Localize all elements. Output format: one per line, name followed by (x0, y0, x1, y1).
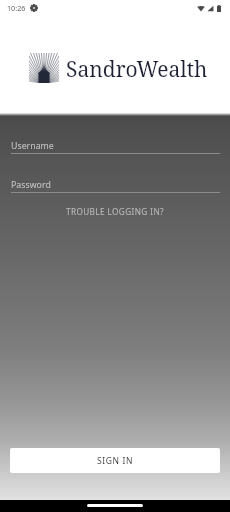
other: Wi-Fi (197, 5, 205, 12)
staticText: SIGN IN (97, 455, 133, 467)
button[interactable]: Password (11, 179, 220, 193)
button[interactable]: Username (11, 140, 220, 154)
staticText: TROUBLE LOGGING IN? (66, 206, 164, 217)
staticText: SandroWealth (66, 55, 208, 84)
button[interactable]: TROUBLE LOGGING IN? (0, 203, 230, 219)
other: Mobile signal (207, 5, 214, 12)
staticText: Username (11, 140, 54, 152)
other: SandroWealth logo (29, 53, 59, 83)
button[interactable]: SIGN IN (10, 448, 220, 473)
other: Battery (217, 5, 221, 12)
staticText: 10:26 (7, 3, 26, 13)
other: Settings (30, 4, 38, 12)
staticText: Password (11, 179, 51, 191)
